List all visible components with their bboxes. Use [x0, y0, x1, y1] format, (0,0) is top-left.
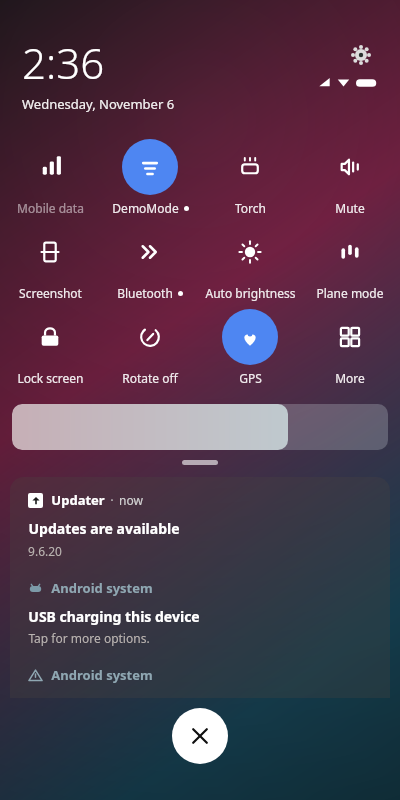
staticText: Updater [51, 491, 105, 509]
button[interactable]: Mobile data [0, 131, 100, 216]
staticText: DemoMode [112, 200, 179, 216]
button[interactable]: Rotate off [100, 301, 200, 386]
button[interactable]: Clear all notifications [172, 708, 228, 764]
staticText: Bluetooth [117, 285, 173, 301]
button[interactable]: Torch [200, 131, 300, 216]
button[interactable]: Screenshot [0, 216, 100, 301]
button[interactable]: Android system [10, 666, 390, 698]
button[interactable]: Updater [10, 477, 390, 569]
staticText: 2:36 [22, 34, 105, 91]
button[interactable]: Plane mode [300, 216, 400, 301]
staticText: GPS [239, 370, 262, 386]
staticText: Tap for more options. [28, 630, 150, 646]
staticText: Lock screen [17, 370, 84, 386]
staticText: · [110, 491, 114, 509]
staticText: USB charging this device [28, 607, 200, 626]
staticText: Android system [51, 579, 153, 597]
button[interactable]: More [300, 301, 400, 386]
button[interactable]: Bluetooth [100, 216, 200, 301]
staticText: Torch [235, 200, 266, 216]
button[interactable]: Brightness [12, 404, 388, 450]
staticText: Updates are available [28, 519, 180, 538]
staticText: Mobile data [17, 200, 84, 216]
button[interactable]: Lock screen [0, 301, 100, 386]
button[interactable]: GPS [200, 301, 300, 386]
staticText: More [335, 370, 365, 386]
staticText: Android system [51, 666, 153, 684]
staticText: Wednesday, November 6 [22, 95, 175, 113]
staticText: Plane mode [316, 285, 384, 301]
button[interactable]: Auto brightness [200, 216, 300, 301]
button[interactable]: Settings [344, 38, 378, 72]
button[interactable]: Mute [300, 131, 400, 216]
staticText: Mute [335, 200, 365, 216]
staticText: Rotate off [122, 370, 178, 386]
staticText: Auto brightness [205, 285, 296, 301]
staticText: 9.6.20 [28, 543, 62, 559]
staticText: now [119, 492, 143, 508]
button[interactable]: DemoMode [100, 131, 200, 216]
button[interactable]: Android system [10, 579, 390, 658]
staticText: Screenshot [19, 285, 82, 301]
